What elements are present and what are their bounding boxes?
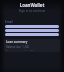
button[interactable] [5,29,59,32]
staticText: LoanWallet [0,2,64,8]
staticText: Next payment Aug 30 [6,50,34,51]
staticText: Loan summary [6,40,28,44]
button[interactable]: Loan summary [6,40,58,51]
button[interactable] [5,33,59,36]
button[interactable] [5,25,59,28]
staticText: Balance due 1,240 [6,45,29,49]
staticText: Sign in to continue [0,9,64,13]
staticText: Email [5,20,13,24]
